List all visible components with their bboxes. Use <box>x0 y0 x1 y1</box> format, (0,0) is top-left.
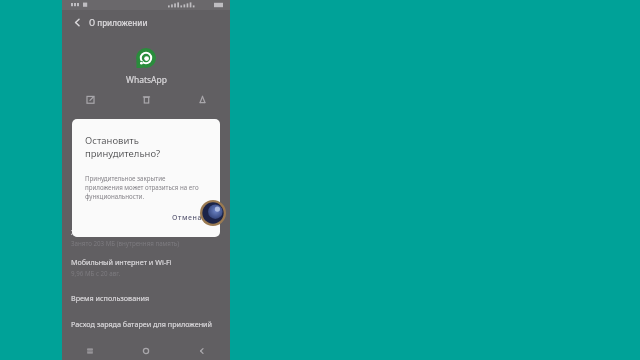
staticText: Принудительное закрытие приложения может… <box>85 174 199 201</box>
button[interactable]: Back <box>174 342 230 360</box>
staticText: Время использования <box>71 293 150 303</box>
button[interactable]: Back <box>68 13 86 31</box>
button[interactable]: Расход заряда батареи для приложений <box>62 319 230 329</box>
button[interactable]: Хранилище и кеш <box>62 227 230 247</box>
staticText: Расход заряда батареи для приложений <box>71 319 212 329</box>
button[interactable]: Home <box>118 342 174 360</box>
button[interactable]: Отмена <box>166 210 209 226</box>
button[interactable]: Мобильный интернет и Wi-Fi <box>62 257 230 277</box>
button[interactable]: Force stop <box>174 90 230 108</box>
staticText: О приложении <box>89 17 148 28</box>
staticText: Отмена <box>172 213 203 223</box>
staticText: Занято 203 МБ (внутренняя память) <box>71 239 180 247</box>
staticText: Остановить принудительно? <box>85 134 161 160</box>
button[interactable]: Время использования <box>62 293 230 303</box>
button[interactable]: Recent apps <box>62 342 118 360</box>
staticText: Хранилище и кеш <box>71 227 134 237</box>
staticText: 9,96 МБ с 20 авг. <box>71 269 121 277</box>
button[interactable]: Uninstall <box>118 90 174 108</box>
staticText: WhatsApp <box>126 74 167 86</box>
button[interactable]: Open <box>62 90 118 108</box>
staticText: Мобильный интернет и Wi-Fi <box>71 257 172 267</box>
